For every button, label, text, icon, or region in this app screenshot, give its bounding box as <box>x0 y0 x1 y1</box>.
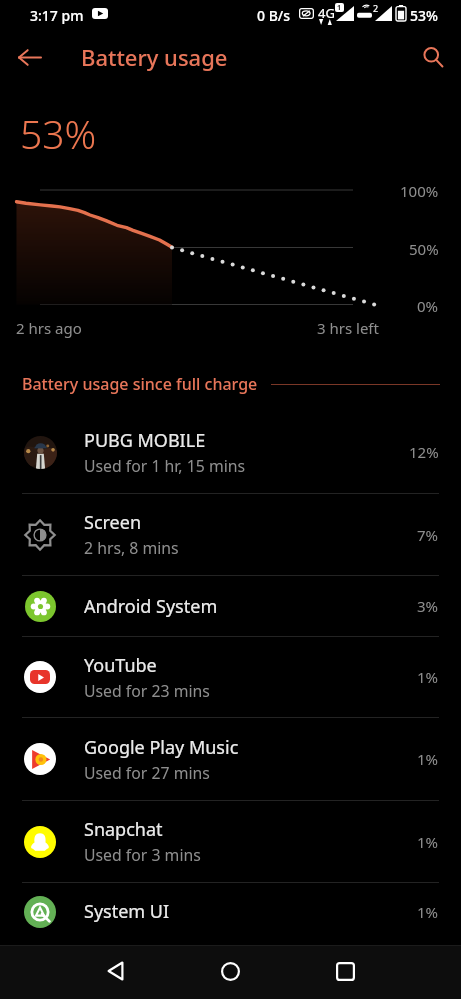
staticText: Google Play Music <box>84 735 239 760</box>
staticText: 0 B/s <box>257 6 290 25</box>
button[interactable]: Google Play Music <box>0 718 461 800</box>
button[interactable]: Android System <box>0 576 461 636</box>
staticText: 1 <box>337 3 342 12</box>
staticText: 7% <box>417 525 439 545</box>
button[interactable]: Home <box>207 945 254 999</box>
staticText: Battery usage since full charge <box>22 373 258 395</box>
button[interactable]: Back <box>0 30 58 84</box>
button[interactable]: Back <box>92 945 139 999</box>
button[interactable]: Screen <box>0 494 461 575</box>
staticText: Used for 27 mins <box>84 762 210 784</box>
button[interactable]: Recents <box>322 945 369 999</box>
staticText: PUBG MOBILE <box>84 428 206 453</box>
button[interactable]: System UI <box>0 883 461 940</box>
staticText: 53% <box>20 107 97 160</box>
staticText: 3 hrs left <box>317 318 379 338</box>
staticText: 3% <box>417 596 439 616</box>
staticText: 100% <box>400 181 439 201</box>
staticText: Android System <box>84 594 218 619</box>
button[interactable]: Search <box>405 30 461 84</box>
staticText: 1% <box>417 749 439 769</box>
staticText: 2 hrs, 8 mins <box>84 537 179 559</box>
staticText: 4G <box>318 4 335 22</box>
staticText: 3:17 pm <box>30 6 84 25</box>
staticText: 0% <box>417 296 439 316</box>
button[interactable]: Snapchat <box>0 801 461 882</box>
staticText: 50% <box>409 239 439 259</box>
staticText: System UI <box>84 899 170 924</box>
staticText: 2 hrs ago <box>16 318 82 338</box>
staticText: 2 <box>373 2 379 14</box>
staticText: Used for 3 mins <box>84 844 201 866</box>
staticText: Screen <box>84 510 142 535</box>
staticText: Snapchat <box>84 817 163 842</box>
staticText: Battery usage <box>81 42 228 72</box>
staticText: 1% <box>417 832 439 852</box>
staticText: Used for 1 hr, 15 mins <box>84 455 246 477</box>
staticText: 1% <box>417 667 439 687</box>
button[interactable]: PUBG MOBILE <box>0 411 461 493</box>
staticText: Used for 23 mins <box>84 680 210 702</box>
staticText: 1% <box>417 902 439 922</box>
staticText: 53% <box>410 6 438 25</box>
staticText: YouTube <box>84 653 157 678</box>
staticText: 12% <box>409 442 439 462</box>
button[interactable]: YouTube <box>0 637 461 717</box>
